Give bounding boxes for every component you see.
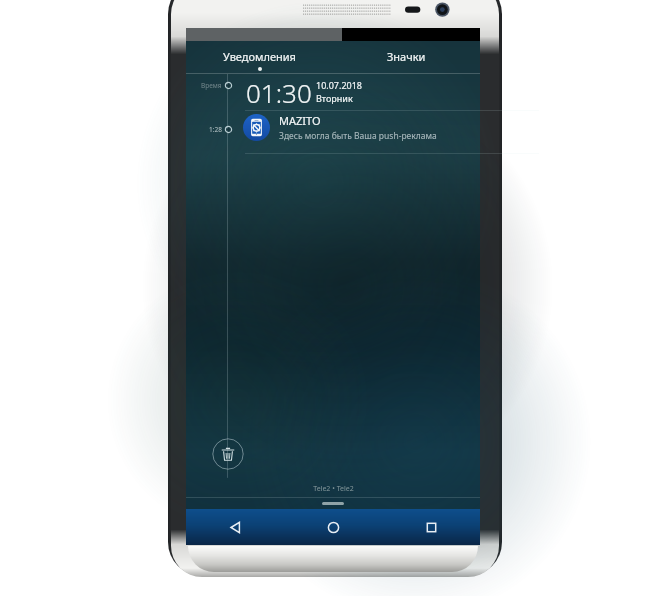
- staticText: Значки: [387, 49, 426, 64]
- button[interactable]: Back: [186, 509, 284, 545]
- staticText: Здесь могла быть Ваша push-реклама: [279, 130, 437, 142]
- button[interactable]: Время: [186, 74, 480, 110]
- button[interactable]: Home: [284, 509, 382, 545]
- staticText: Уведомления: [223, 49, 296, 64]
- staticText: Время: [201, 81, 222, 90]
- button[interactable]: Recent apps: [382, 509, 480, 545]
- button[interactable]: 1:28: [186, 111, 480, 153]
- staticText: 01:30: [246, 75, 312, 110]
- staticText: Вторник: [316, 92, 353, 104]
- button[interactable]: Значки: [333, 41, 480, 74]
- button[interactable]: Уведомления: [186, 41, 333, 74]
- staticText: 1:28: [209, 125, 222, 134]
- staticText: 10.07.2018: [316, 79, 363, 91]
- staticText: Tele2 • Tele2: [313, 484, 354, 494]
- staticText: MAZITO: [279, 113, 321, 128]
- button[interactable]: Collapse panel: [322, 502, 344, 505]
- button[interactable]: Clear all notifications: [212, 438, 244, 470]
